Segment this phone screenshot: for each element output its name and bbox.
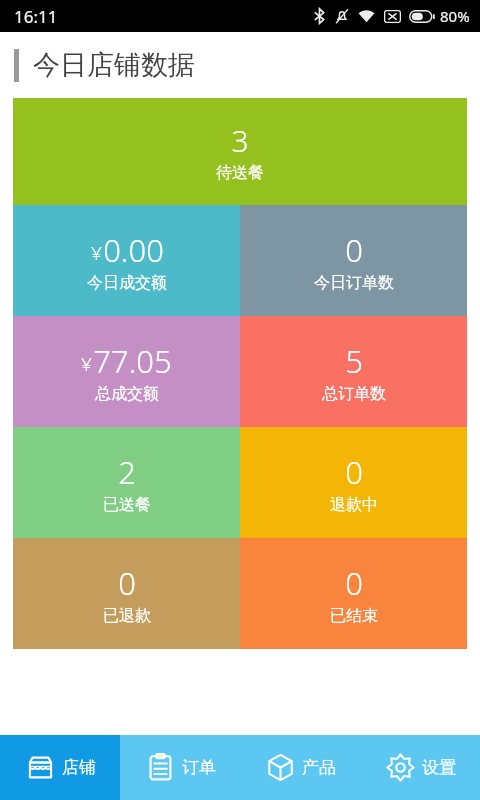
staticText: 0	[118, 562, 136, 604]
button[interactable]: 产品	[240, 735, 360, 800]
staticText: 3	[231, 120, 249, 161]
button[interactable]: 3	[13, 98, 467, 205]
staticText: 设置	[422, 757, 456, 778]
button[interactable]: 0	[240, 205, 467, 316]
staticText: 已退款	[103, 606, 151, 626]
button[interactable]: ¥	[13, 316, 240, 427]
button[interactable]: 5	[240, 316, 467, 427]
staticText: 16:11	[14, 5, 58, 28]
staticText: 0	[345, 229, 363, 271]
button[interactable]: 0	[240, 427, 467, 538]
button[interactable]: 0	[13, 538, 240, 649]
staticText: 退款中	[330, 495, 378, 515]
button[interactable]: 订单	[120, 735, 240, 800]
staticText: 0.00	[103, 229, 164, 271]
staticText: 待送餐	[216, 163, 264, 183]
staticText: ¥	[81, 351, 92, 377]
staticText: 已结束	[330, 606, 378, 626]
staticText: 产品	[302, 757, 336, 778]
staticText: 77.05	[93, 340, 172, 382]
button[interactable]: 2	[13, 427, 240, 538]
button[interactable]: ¥	[13, 205, 240, 316]
staticText: 80%	[440, 6, 470, 26]
staticText: 总成交额	[95, 384, 159, 404]
button[interactable]: 0	[240, 538, 467, 649]
staticText: 5	[345, 340, 363, 382]
staticText: 已送餐	[103, 495, 151, 515]
staticText: 2	[118, 451, 136, 493]
button[interactable]: 店铺	[0, 735, 120, 800]
staticText: 总订单数	[322, 384, 386, 404]
staticText: 店铺	[62, 757, 96, 778]
staticText: 今日成交额	[87, 273, 167, 293]
staticText: 0	[345, 562, 363, 604]
button[interactable]: 设置	[360, 735, 480, 800]
staticText: 订单	[182, 757, 216, 778]
staticText: 今日店铺数据	[33, 48, 195, 82]
staticText: 今日订单数	[314, 273, 394, 293]
staticText: ¥	[91, 240, 102, 266]
staticText: 0	[345, 451, 363, 493]
